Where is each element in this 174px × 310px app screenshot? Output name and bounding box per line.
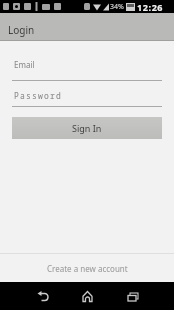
- button[interactable]: [65, 282, 110, 310]
- button[interactable]: Create a new account: [0, 254, 174, 282]
- staticText: Login: [8, 23, 35, 37]
- staticText: Create a new account: [47, 263, 128, 274]
- staticText: 12:26: [137, 1, 164, 13]
- staticText: Email: [14, 59, 35, 70]
- button[interactable]: Password: [12, 81, 162, 107]
- staticText: Sign In: [72, 122, 102, 134]
- button[interactable]: [20, 282, 65, 310]
- button[interactable]: [110, 282, 155, 310]
- staticText: 34%: [110, 2, 124, 12]
- button[interactable]: Sign In: [12, 117, 162, 139]
- staticText: Password: [14, 90, 62, 101]
- button[interactable]: Email: [12, 55, 162, 81]
